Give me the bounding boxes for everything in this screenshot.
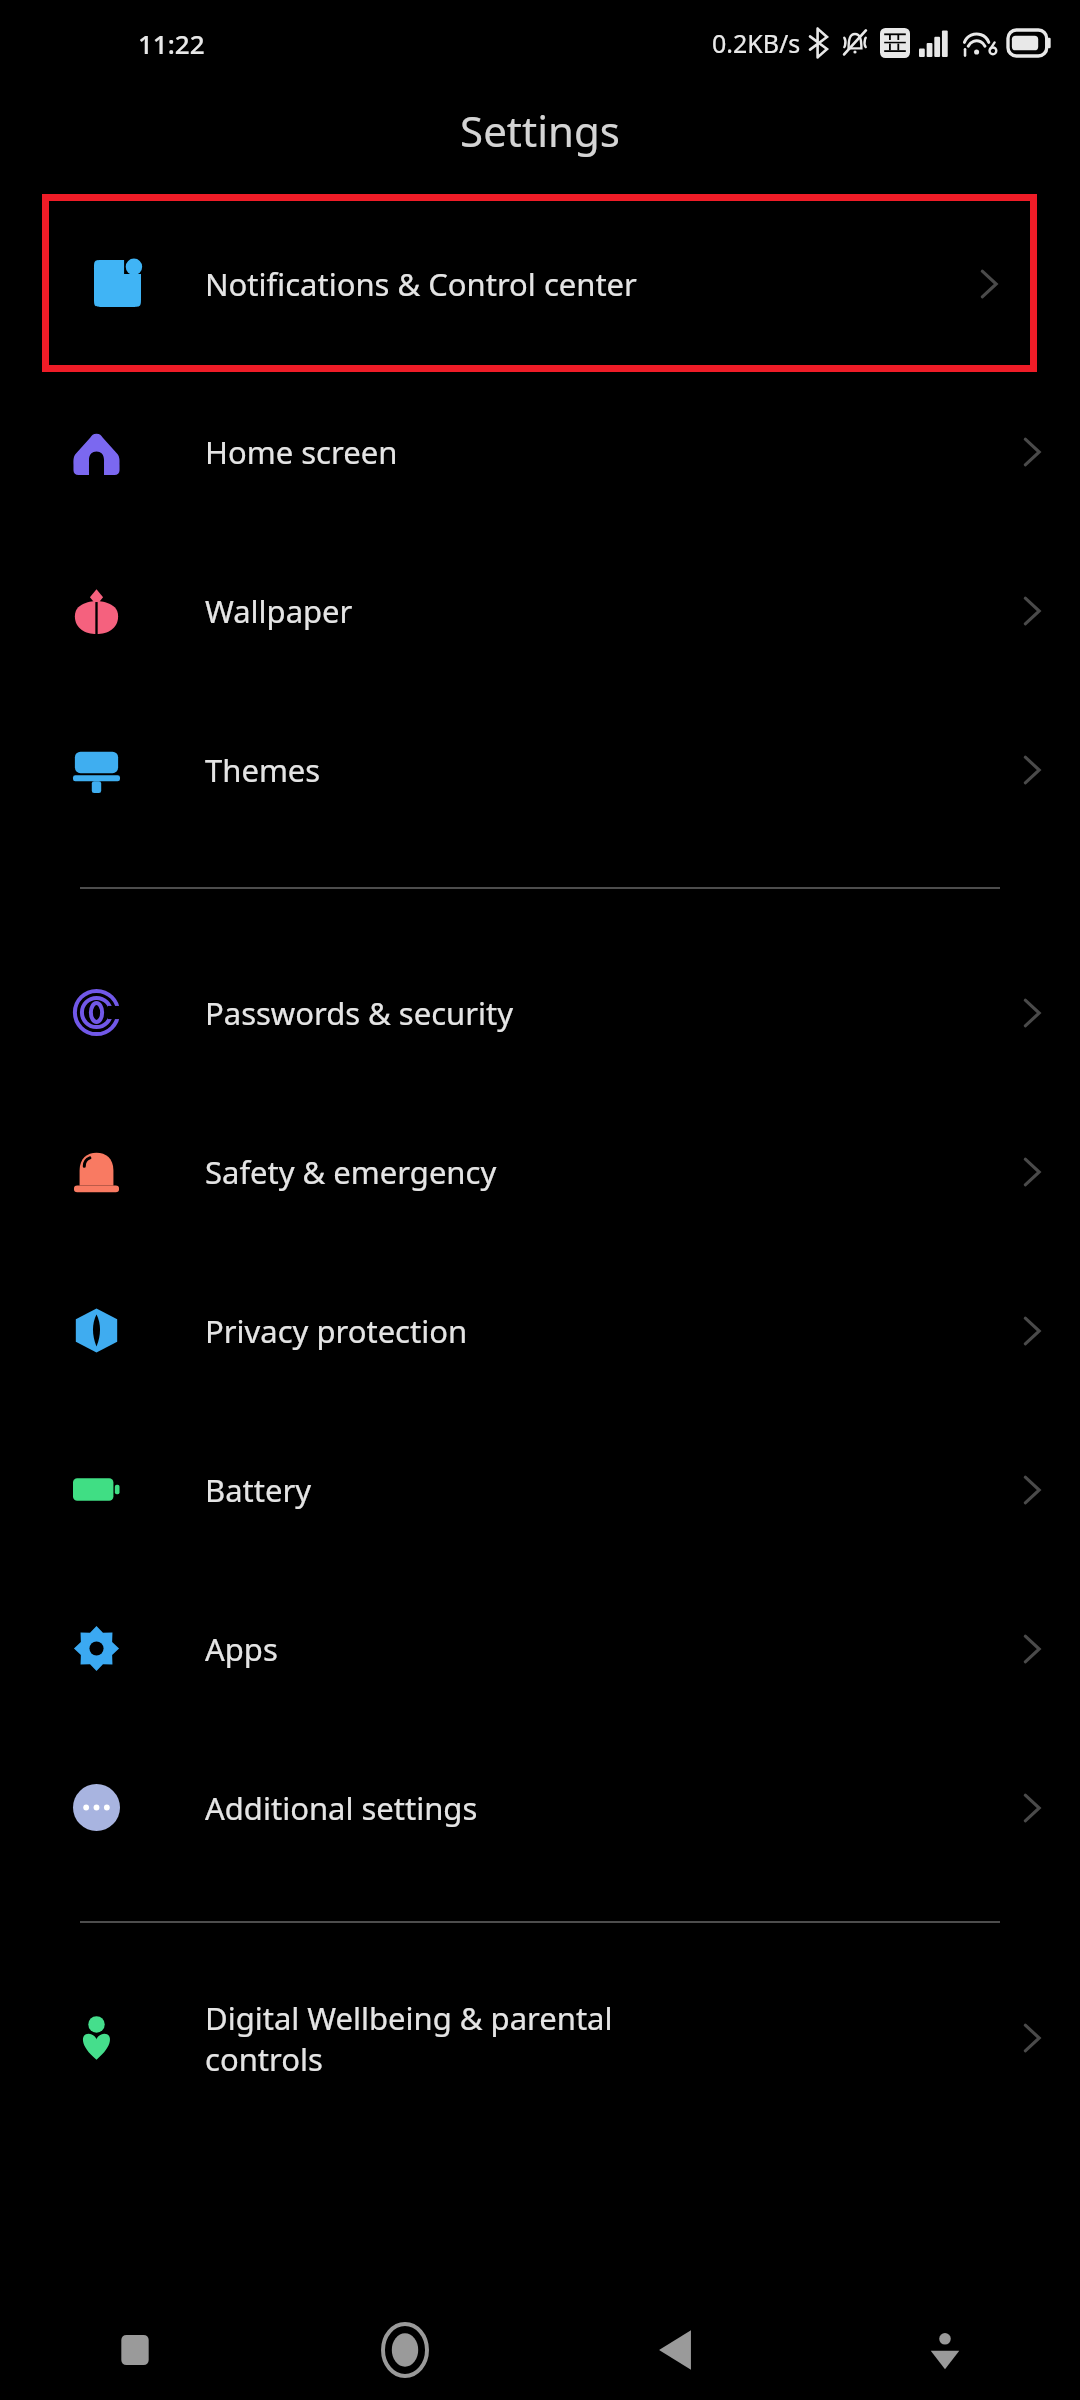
button[interactable]: Apps	[0, 1569, 1080, 1728]
button[interactable]: Recents	[0, 2300, 270, 2400]
button[interactable]: Wallpaper	[0, 531, 1080, 690]
button[interactable]: Notifications & Control center	[42, 194, 1037, 372]
button[interactable]: Back	[540, 2300, 810, 2400]
staticText: Wallpaper	[205, 590, 954, 632]
staticText: Additional settings	[205, 1787, 954, 1829]
staticText: Settings	[460, 102, 620, 159]
staticText: Privacy protection	[205, 1310, 954, 1352]
staticText: Battery	[205, 1469, 954, 1511]
button[interactable]: Themes	[0, 690, 1080, 849]
staticText: Notifications & Control center	[205, 263, 941, 305]
button[interactable]: Privacy protection	[0, 1251, 1080, 1410]
staticText: Passwords & security	[205, 992, 954, 1034]
staticText: 0.2KB/s	[712, 26, 801, 60]
button[interactable]: Additional settings	[0, 1728, 1080, 1887]
staticText: Safety & emergency	[205, 1151, 954, 1193]
staticText: Themes	[205, 749, 954, 791]
staticText: Apps	[205, 1628, 954, 1670]
staticText: Digital Wellbeing & parental controls	[205, 1997, 954, 2080]
button[interactable]: Safety & emergency	[0, 1092, 1080, 1251]
button[interactable]: Home screen	[0, 372, 1080, 531]
button[interactable]: Battery	[0, 1410, 1080, 1569]
button[interactable]: Hide keyboard	[810, 2300, 1080, 2400]
button[interactable]: Home	[270, 2300, 540, 2400]
staticText: 11:22	[138, 26, 205, 61]
button[interactable]: Passwords & security	[0, 933, 1080, 1092]
button[interactable]: Digital Wellbeing & parental controls	[0, 1963, 1080, 2113]
staticText: Home screen	[205, 431, 954, 473]
